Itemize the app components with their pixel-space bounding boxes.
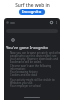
staticText: Surf the web in — [15, 2, 50, 9]
staticText: Now you can browse privately, and other … — [10, 51, 60, 64]
button[interactable]: Open tabs — [50, 21, 53, 24]
button[interactable]: Incognito — [6, 21, 9, 24]
staticText: Chrome won't save the following informat… — [10, 64, 60, 77]
staticText: You've gone Incognito — [6, 45, 48, 50]
button[interactable]: More options — [55, 21, 58, 24]
staticText: Your activity might still be visible to:… — [10, 78, 56, 88]
staticText: Incognito — [22, 9, 42, 15]
button[interactable]: Incognito — [19, 9, 45, 15]
